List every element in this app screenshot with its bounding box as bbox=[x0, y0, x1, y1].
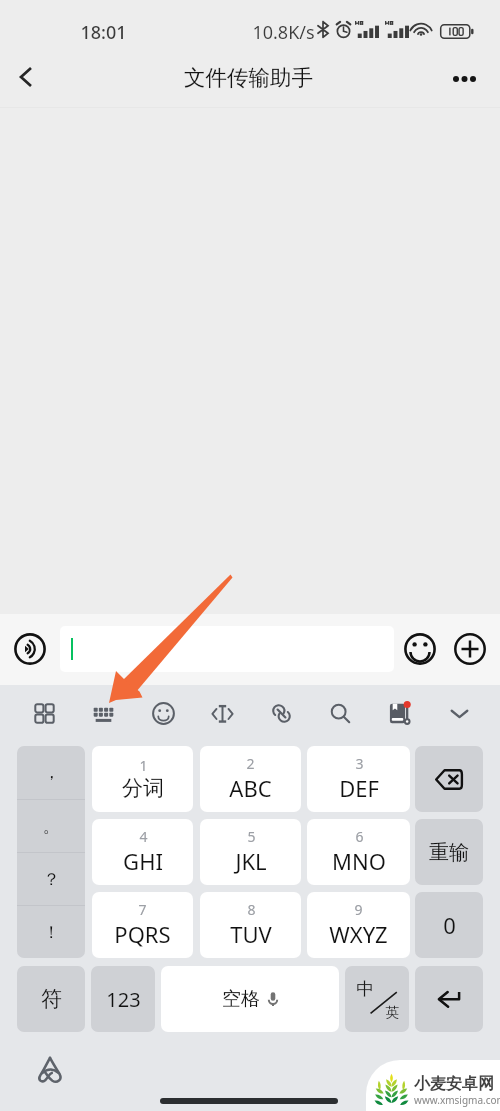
button[interactable]: Enter bbox=[415, 966, 483, 1032]
staticText: 重输 bbox=[429, 840, 469, 865]
button[interactable]: 3 bbox=[307, 746, 410, 812]
button[interactable]: More functions bbox=[454, 633, 486, 665]
button[interactable]: Keyboard layout bbox=[81, 691, 125, 735]
button[interactable]: 1 bbox=[92, 746, 193, 812]
button[interactable]: 9 bbox=[307, 892, 410, 958]
button[interactable]: 7 bbox=[92, 892, 193, 958]
button[interactable]: 符 bbox=[17, 966, 85, 1032]
staticText: www.xmsigma.com bbox=[414, 1093, 500, 1107]
staticText: TUV bbox=[230, 919, 272, 949]
staticText: 空格 bbox=[222, 987, 260, 1011]
button[interactable]: Search bbox=[318, 691, 362, 735]
button[interactable]: Voice input bbox=[14, 633, 46, 665]
staticText: ABC bbox=[229, 773, 272, 803]
staticText: 123 bbox=[106, 986, 141, 1013]
button[interactable]: Hide keyboard bbox=[437, 691, 481, 735]
button[interactable]: Cursor move bbox=[200, 691, 244, 735]
button[interactable]: Dictionary bbox=[378, 691, 422, 735]
staticText: 英 bbox=[385, 1004, 399, 1021]
button[interactable]: Backspace bbox=[415, 746, 483, 812]
staticText: 分词 bbox=[122, 775, 164, 801]
staticText: DEF bbox=[339, 773, 379, 803]
button[interactable] bbox=[60, 626, 394, 672]
button[interactable]: More options bbox=[440, 55, 488, 103]
staticText: 。 bbox=[43, 816, 60, 837]
button[interactable]: ！ bbox=[17, 906, 85, 958]
staticText: 符 bbox=[41, 986, 62, 1012]
staticText: MNO bbox=[332, 846, 386, 876]
staticText: 1 bbox=[139, 756, 148, 775]
button[interactable]: 6 bbox=[307, 819, 410, 885]
staticText: 2 bbox=[246, 754, 255, 773]
staticText: 9 bbox=[354, 900, 363, 919]
button[interactable]: Emoji bbox=[404, 633, 436, 665]
button[interactable]: Panel bbox=[22, 691, 66, 735]
button[interactable]: 。 bbox=[17, 800, 85, 852]
staticText: GHI bbox=[123, 846, 163, 876]
button[interactable]: 0 bbox=[415, 892, 483, 958]
staticText: 4 bbox=[139, 827, 148, 846]
staticText: 8 bbox=[247, 900, 256, 919]
button[interactable]: 4 bbox=[92, 819, 193, 885]
staticText: 0 bbox=[443, 910, 456, 940]
button[interactable]: 空格 bbox=[161, 966, 339, 1032]
staticText: ， bbox=[43, 762, 60, 783]
button[interactable]: 123 bbox=[91, 966, 155, 1032]
button[interactable]: Clipboard bbox=[259, 691, 303, 735]
staticText: 5 bbox=[247, 827, 256, 846]
staticText: WXYZ bbox=[329, 919, 388, 949]
button[interactable]: 5 bbox=[200, 819, 301, 885]
button[interactable]: 重输 bbox=[415, 819, 483, 885]
button[interactable]: Emoji bbox=[141, 691, 185, 735]
staticText: 10.8K/s bbox=[252, 20, 315, 45]
staticText: 文件传输助手 bbox=[184, 64, 313, 91]
staticText: PQRS bbox=[114, 919, 171, 949]
staticText: 小麦安卓网 bbox=[414, 1074, 494, 1094]
button[interactable]: Sogou input method bbox=[34, 1054, 66, 1084]
staticText: ！ bbox=[43, 922, 60, 943]
button[interactable]: 中 bbox=[345, 966, 409, 1032]
staticText: ？ bbox=[43, 869, 60, 890]
staticText: 中 bbox=[356, 978, 374, 1000]
button[interactable]: 8 bbox=[200, 892, 301, 958]
staticText: JKL bbox=[235, 846, 267, 876]
button[interactable]: Back bbox=[3, 54, 49, 100]
button[interactable]: 2 bbox=[200, 746, 301, 812]
staticText: 7 bbox=[138, 900, 147, 919]
staticText: 18:01 bbox=[80, 20, 127, 45]
staticText: 6 bbox=[355, 827, 364, 846]
staticText: 3 bbox=[355, 754, 364, 773]
button[interactable]: ， bbox=[17, 746, 85, 799]
button[interactable]: ？ bbox=[17, 853, 85, 905]
